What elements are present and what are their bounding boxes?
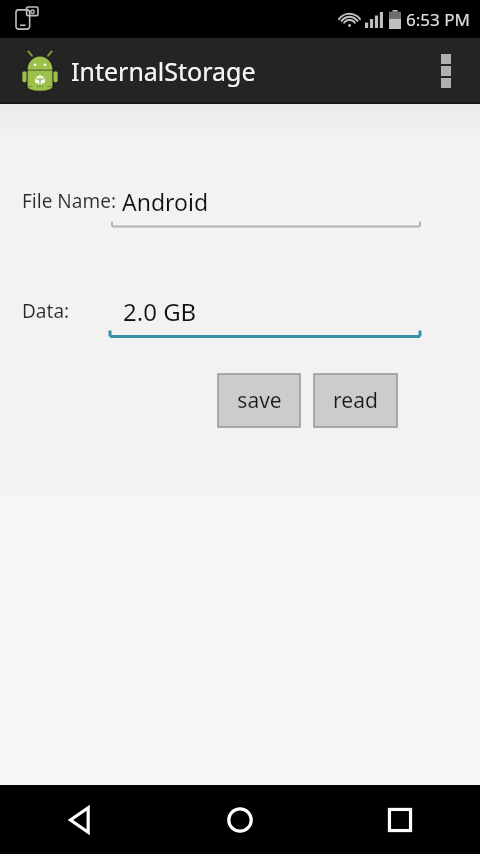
staticText: InternalStorage	[71, 54, 256, 88]
staticText: File Name:	[22, 188, 116, 214]
button[interactable]: save	[218, 374, 300, 427]
button[interactable]: read	[314, 374, 397, 427]
staticText: Data:	[22, 298, 70, 324]
staticText: Android	[122, 186, 209, 217]
staticText: save	[237, 386, 282, 415]
staticText: read	[333, 386, 378, 415]
button[interactable]: Home	[160, 785, 320, 854]
staticText: 2.0 GB	[123, 295, 197, 328]
button[interactable]: Back	[0, 785, 160, 854]
button[interactable]: More options	[426, 43, 466, 99]
staticText: 6:53 PM	[406, 8, 470, 31]
button[interactable]: Recent apps	[320, 785, 480, 854]
